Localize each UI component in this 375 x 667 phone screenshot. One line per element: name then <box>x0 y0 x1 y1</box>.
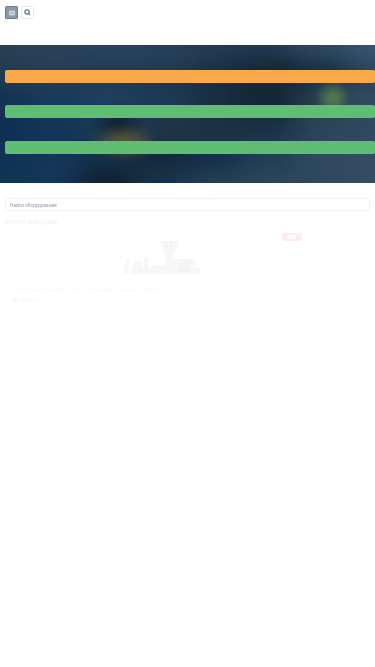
button[interactable]: Search <box>21 6 34 19</box>
staticText: Хиты продаж <box>5 216 58 226</box>
staticText: ХИТ <box>287 234 297 240</box>
button[interactable]: Найти оборудование <box>5 198 370 211</box>
staticText: Найти оборудование <box>10 202 57 208</box>
button[interactable]: Catalog menu <box>5 6 18 19</box>
